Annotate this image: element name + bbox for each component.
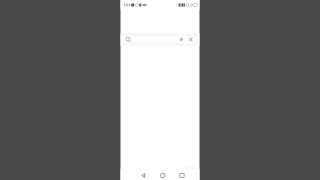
button[interactable]: Recent apps [172,170,192,180]
button[interactable]: Voice search [176,36,186,43]
button[interactable]: Search [120,36,136,43]
button[interactable]: Close search [186,36,195,43]
button[interactable]: Home [153,170,172,180]
button[interactable]: Back [134,170,153,180]
